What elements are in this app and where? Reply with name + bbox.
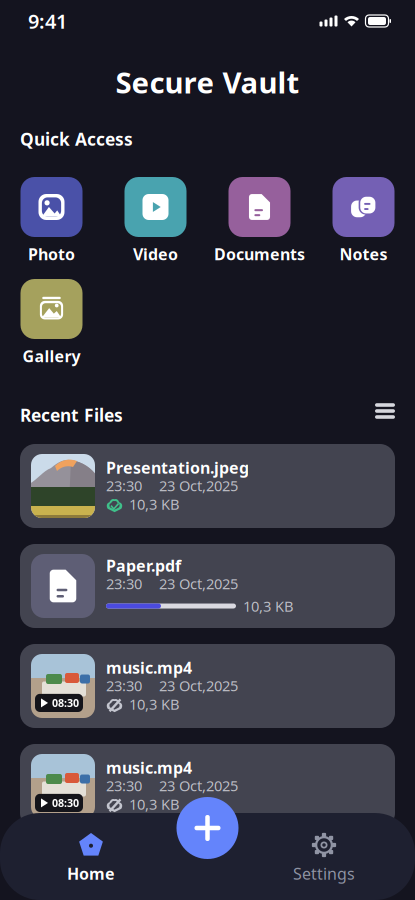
staticText: Photo <box>28 243 75 265</box>
button[interactable]: Gallery <box>0 279 103 366</box>
staticText: 23 Oct,2025 <box>159 676 238 695</box>
staticText: Home <box>67 863 115 884</box>
staticText: 23 Oct,2025 <box>159 476 238 495</box>
button[interactable]: Add file <box>176 797 238 859</box>
button[interactable]: Notes <box>311 177 415 264</box>
staticText: Secure Vault <box>115 62 299 101</box>
staticText: 23 Oct,2025 <box>159 574 238 593</box>
button[interactable]: Video <box>103 177 207 264</box>
button[interactable]: Photo <box>0 177 103 264</box>
button[interactable]: Documents <box>207 177 311 264</box>
staticText: 23:30 <box>106 776 142 795</box>
staticText: 23:30 <box>106 476 142 495</box>
staticText: Paper.pdf <box>106 555 181 576</box>
button[interactable]: Sort and filter <box>375 406 395 424</box>
staticText: Recent Files <box>20 403 123 426</box>
staticText: 23:30 <box>106 676 142 695</box>
staticText: 23 Oct,2025 <box>159 776 238 795</box>
staticText: 08:30 <box>52 696 79 710</box>
staticText: 10,3 KB <box>129 494 180 514</box>
staticText: Gallery <box>22 345 80 367</box>
button[interactable]: 08:30 <box>20 744 395 828</box>
button[interactable]: Paper.pdf <box>20 544 395 628</box>
staticText: Quick Access <box>20 127 133 150</box>
staticText: Presentation.jpeg <box>106 457 249 478</box>
staticText: 9:41 <box>28 8 67 34</box>
button[interactable]: Settings <box>249 833 399 882</box>
button[interactable]: Home <box>16 833 166 882</box>
staticText: Settings <box>293 863 355 884</box>
staticText: 10,3 KB <box>243 596 294 616</box>
staticText: Video <box>133 243 178 265</box>
staticText: 10,3 KB <box>129 794 180 814</box>
staticText: 23:30 <box>106 574 142 593</box>
button[interactable]: Presentation.jpeg <box>20 444 395 528</box>
staticText: 08:30 <box>52 796 79 810</box>
staticText: music.mp4 <box>106 657 192 678</box>
button[interactable]: 08:30 <box>20 644 395 728</box>
staticText: Documents <box>214 243 305 265</box>
staticText: Notes <box>339 243 387 265</box>
staticText: 10,3 KB <box>129 694 180 714</box>
staticText: music.mp4 <box>106 757 192 778</box>
